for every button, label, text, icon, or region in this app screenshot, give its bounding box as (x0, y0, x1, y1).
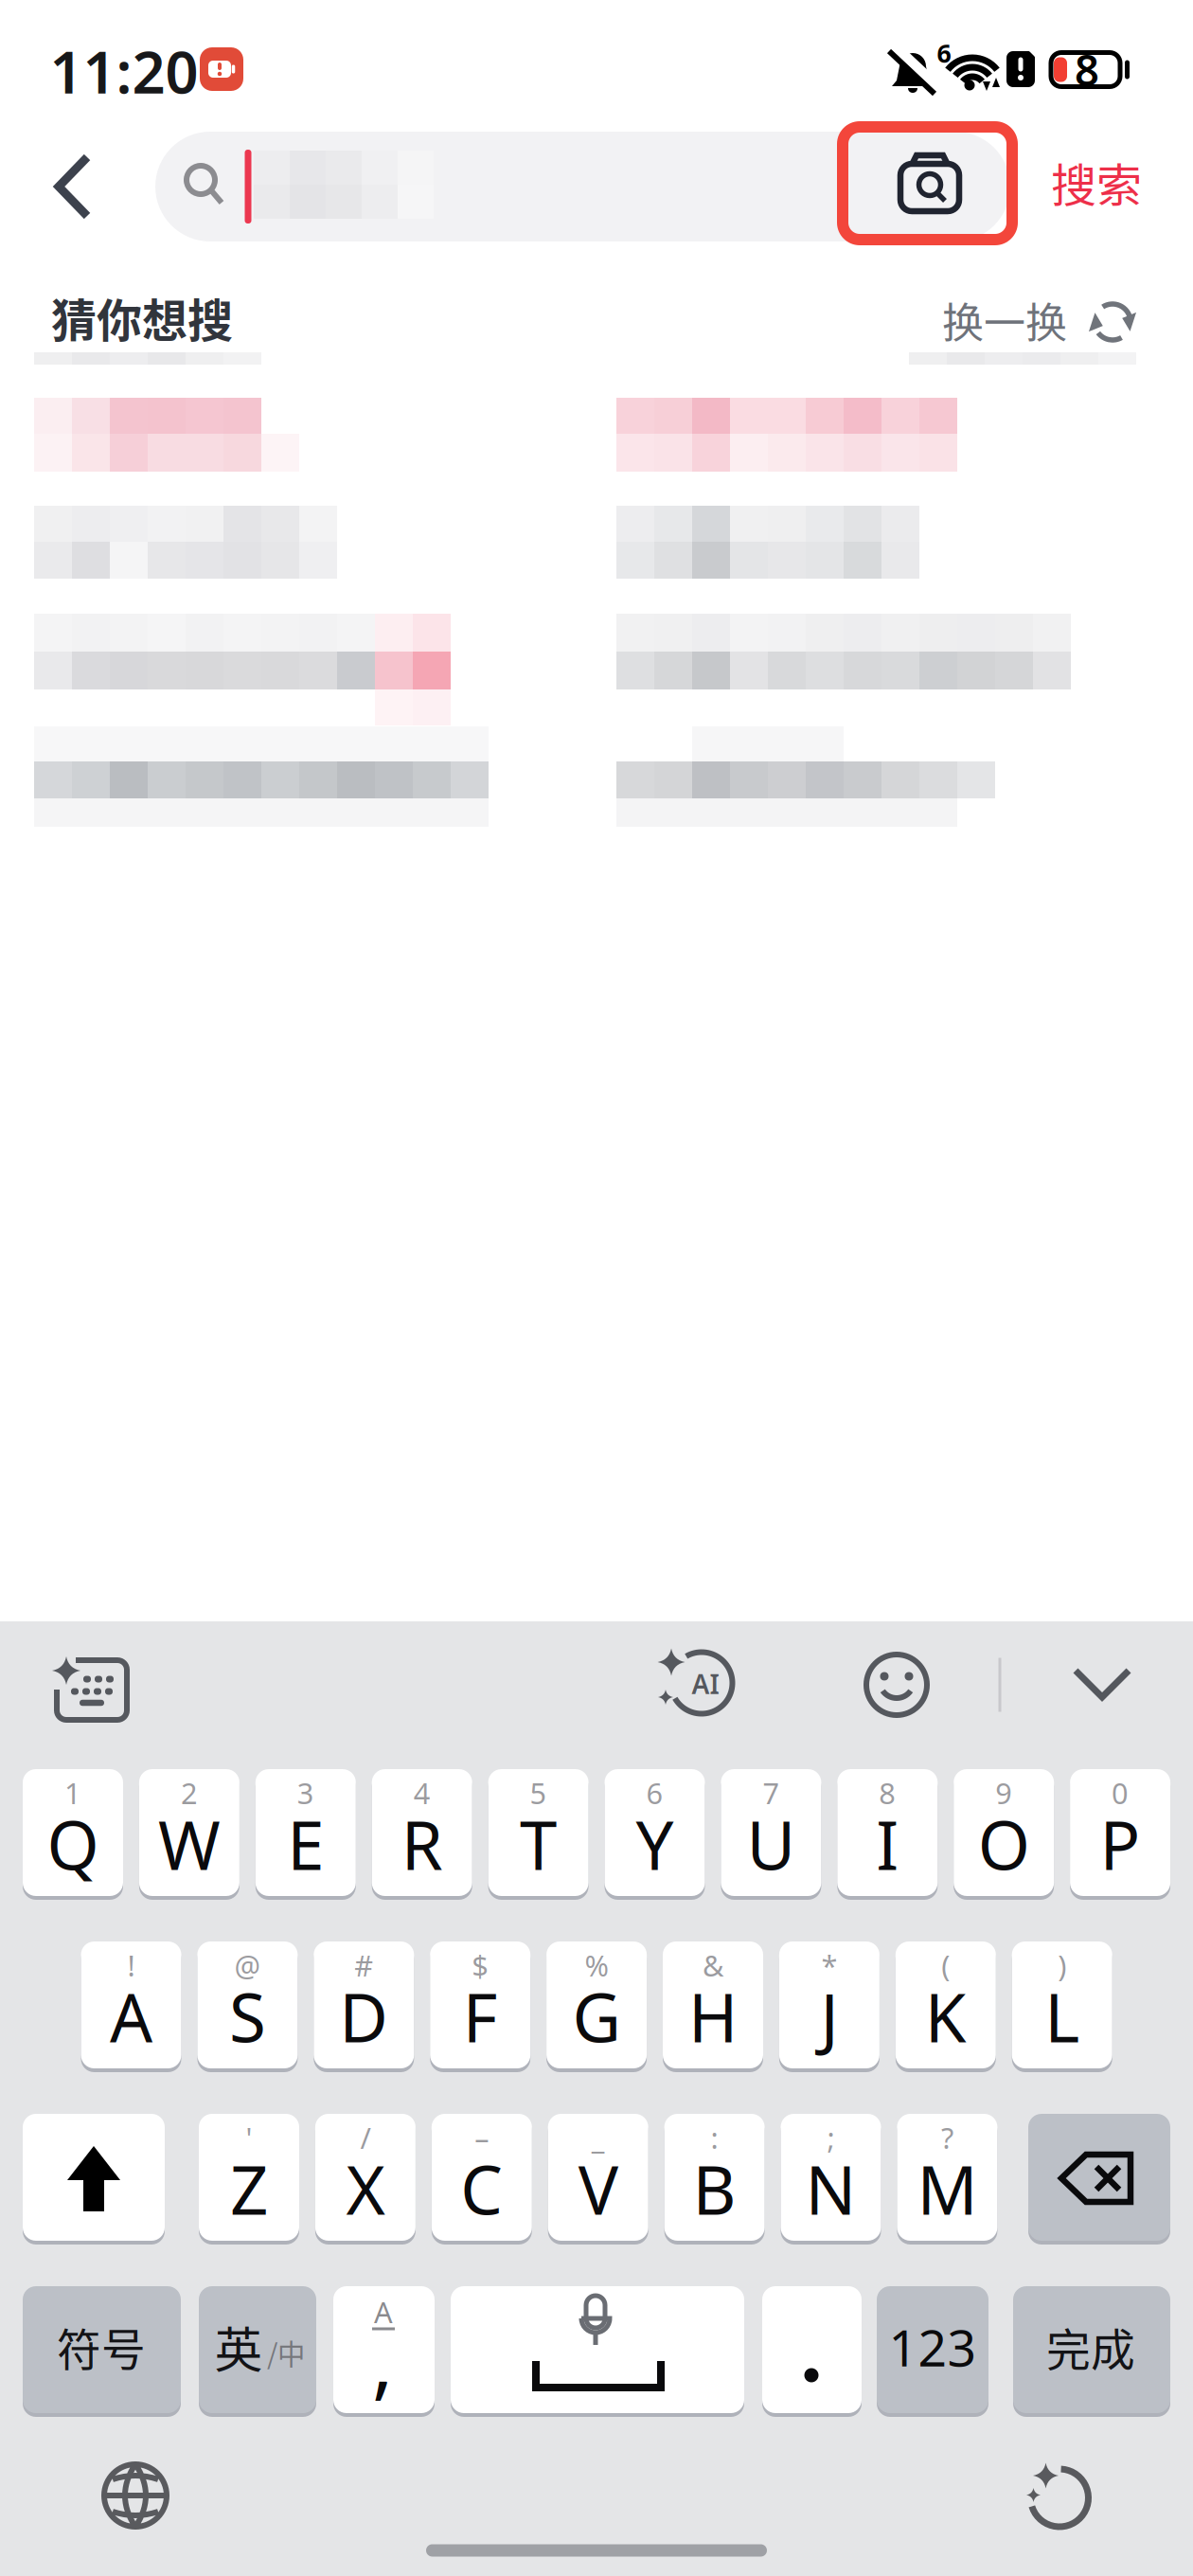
staticText: 完成 (1046, 2315, 1135, 2379)
button[interactable] (315, 2112, 416, 2243)
staticText: S (229, 1972, 266, 2061)
button[interactable] (314, 1940, 414, 2070)
button[interactable] (896, 1940, 996, 2070)
staticText: 8 (1075, 41, 1099, 98)
staticText: 2 (181, 1773, 198, 1812)
staticText: 11:20 (50, 32, 198, 110)
button[interactable] (23, 2112, 165, 2243)
staticText: F (463, 1972, 498, 2061)
button[interactable] (1064, 1660, 1140, 1708)
staticText: 9 (995, 1773, 1012, 1812)
staticText: 1 (64, 1773, 81, 1812)
staticText: % (585, 1946, 608, 1984)
staticText: AI (692, 1666, 719, 1701)
staticText: J (820, 1972, 838, 2061)
button[interactable] (877, 2284, 988, 2415)
button[interactable] (0, 0, 1193, 2576)
staticText: O (978, 1800, 1030, 1888)
button[interactable] (451, 2284, 744, 2415)
button[interactable] (199, 2284, 316, 2415)
staticText: # (354, 1946, 373, 1984)
staticText: N (805, 2144, 856, 2233)
button[interactable] (45, 1652, 139, 1727)
staticText: M (917, 2144, 978, 2233)
staticText: D (339, 1972, 388, 2061)
button[interactable] (0, 0, 1193, 2576)
button[interactable] (1070, 1767, 1170, 1898)
button[interactable] (663, 1940, 763, 2070)
staticText: * (821, 1946, 837, 1984)
button[interactable] (23, 2284, 181, 2415)
button[interactable] (155, 132, 1010, 241)
button[interactable] (882, 138, 977, 233)
staticText: 123 (889, 2313, 977, 2380)
button[interactable] (546, 1940, 647, 2070)
button[interactable] (664, 2112, 765, 2243)
button[interactable] (488, 1767, 589, 1898)
button[interactable] (1004, 2455, 1098, 2540)
button[interactable] (548, 2112, 648, 2243)
button[interactable] (0, 0, 1193, 2576)
button[interactable] (0, 0, 1193, 2576)
button[interactable]: 搜索 (1051, 149, 1142, 215)
button[interactable]: 换一换 (914, 287, 1150, 355)
staticText: B (693, 2144, 736, 2233)
button[interactable] (372, 1767, 472, 1898)
staticText: A (374, 2292, 393, 2331)
staticText: ) (1058, 1946, 1066, 1984)
button[interactable] (857, 1645, 936, 1725)
button[interactable] (81, 1940, 181, 2070)
button[interactable] (762, 2284, 862, 2415)
staticText: C (460, 2144, 503, 2233)
button[interactable] (779, 1940, 880, 2070)
staticText: & (703, 1946, 723, 1984)
staticText: 5 (530, 1773, 547, 1812)
staticText: – (475, 2118, 489, 2157)
staticText: / (360, 2118, 371, 2157)
button[interactable] (432, 2112, 532, 2243)
button[interactable] (0, 0, 1193, 2576)
button[interactable] (1013, 2284, 1170, 2415)
staticText: ; (827, 2118, 835, 2157)
staticText: : (711, 2118, 718, 2157)
staticText: 猜你想搜 (51, 284, 233, 350)
button[interactable] (954, 1767, 1054, 1898)
staticText: K (925, 1972, 967, 2061)
button[interactable] (781, 2112, 881, 2243)
staticText: R (401, 1800, 443, 1888)
button[interactable] (1028, 2112, 1170, 2243)
staticText: G (572, 1972, 621, 2061)
button[interactable] (333, 2284, 435, 2415)
staticText: 6 (646, 1773, 663, 1812)
staticText: 7 (763, 1773, 780, 1812)
staticText: 8 (879, 1773, 896, 1812)
staticText: 0 (1112, 1773, 1129, 1812)
button[interactable] (96, 2456, 175, 2535)
staticText: U (746, 1800, 796, 1888)
staticText: 换一换 (942, 290, 1067, 350)
button[interactable] (1012, 1940, 1112, 2070)
staticText: 英 (214, 2312, 263, 2382)
staticText: _ (591, 2118, 605, 2157)
staticText: Z (230, 2144, 268, 2233)
staticText: H (688, 1972, 738, 2061)
staticText: W (158, 1800, 221, 1888)
button[interactable] (197, 1940, 298, 2070)
button[interactable] (605, 1767, 705, 1898)
button[interactable] (199, 2112, 299, 2243)
button[interactable] (0, 0, 1193, 2576)
button[interactable] (721, 1767, 821, 1898)
button[interactable] (837, 1767, 938, 1898)
staticText: V (578, 2144, 618, 2233)
button[interactable] (255, 1767, 356, 1898)
staticText: $ (472, 1946, 489, 1984)
button[interactable] (139, 1767, 239, 1898)
staticText: Y (636, 1800, 674, 1888)
button[interactable] (0, 0, 1193, 2576)
button[interactable] (430, 1940, 530, 2070)
button[interactable]: AI (639, 1645, 743, 1725)
button[interactable] (45, 144, 101, 229)
button[interactable] (0, 0, 1193, 2576)
button[interactable] (897, 2112, 997, 2243)
button[interactable] (23, 1767, 123, 1898)
